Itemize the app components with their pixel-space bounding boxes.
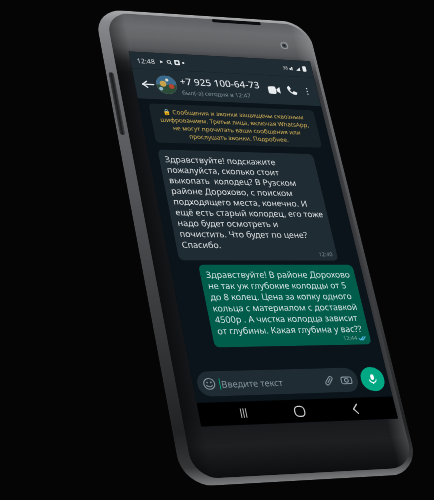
staticText: был(-а) сегодня в 12:47 bbox=[181, 88, 252, 99]
button[interactable]: Home bbox=[283, 399, 316, 423]
button[interactable]: 🔒 Сообщения и звонки защищены сквозным ш… bbox=[148, 103, 322, 148]
staticText: Здравствуйте! В районе Дорохово не так у… bbox=[204, 268, 365, 337]
button[interactable]: Attach bbox=[321, 374, 336, 387]
button[interactable]: Recent apps bbox=[226, 401, 260, 425]
staticText: Здравствуйте! подскажите пожалуйста, ско… bbox=[164, 153, 332, 251]
button[interactable]: Video call bbox=[263, 81, 285, 99]
button[interactable]: Здравствуйте! В районе Дорохово не так у… bbox=[198, 264, 372, 348]
button[interactable]: Voice call bbox=[281, 82, 303, 99]
button[interactable]: Введите текст bbox=[195, 367, 361, 397]
staticText: +7 925 100-64-73 bbox=[178, 75, 261, 91]
staticText: Введите текст bbox=[220, 376, 284, 390]
button[interactable]: Voice message bbox=[358, 367, 387, 392]
staticText: 12:44 bbox=[342, 334, 358, 343]
staticText: 38 bbox=[282, 65, 288, 71]
button[interactable]: Camera bbox=[338, 373, 354, 386]
staticText: 12:48 bbox=[136, 56, 156, 65]
button[interactable]: Back bbox=[137, 76, 158, 92]
staticText: 12:40 bbox=[318, 251, 333, 258]
staticText: 🔒 Сообщения и звонки защищены сквозным ш… bbox=[154, 107, 317, 144]
button[interactable]: Back bbox=[339, 397, 371, 421]
button[interactable]: Contact photo bbox=[154, 75, 178, 94]
button[interactable]: Здравствуйте! подскажите пожалуйста, ско… bbox=[157, 149, 339, 261]
button[interactable]: More options bbox=[299, 85, 315, 98]
